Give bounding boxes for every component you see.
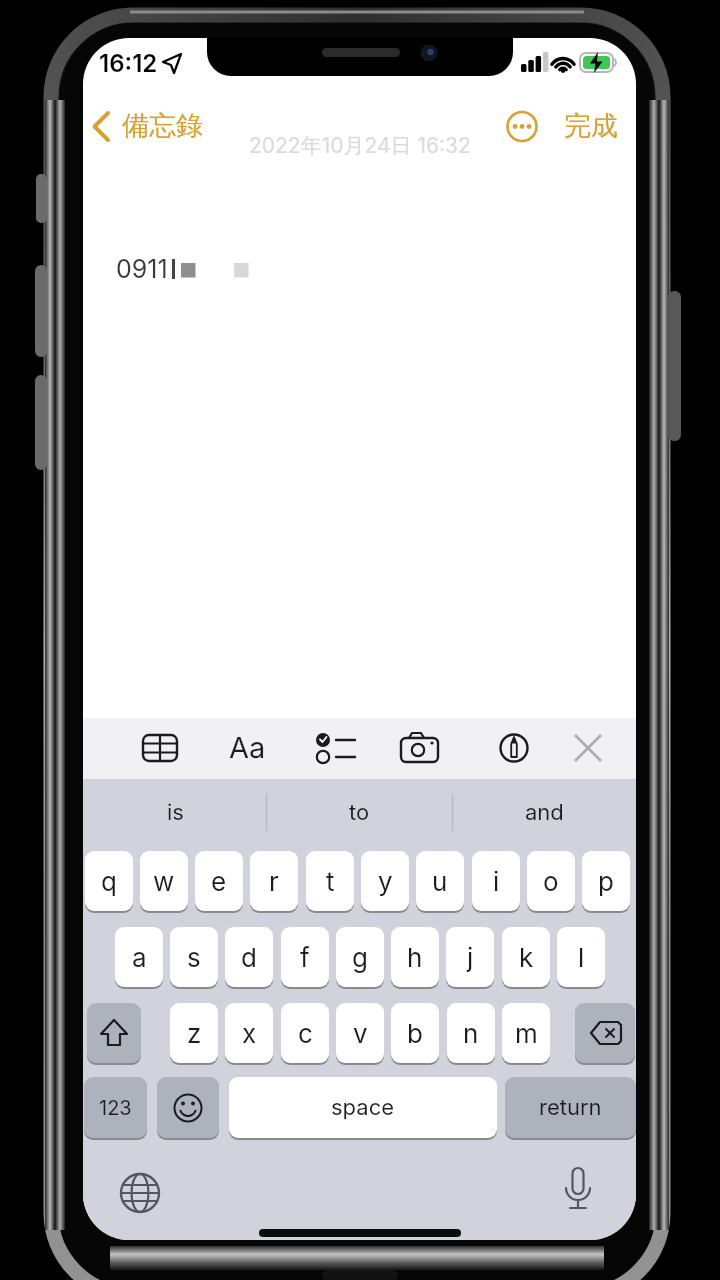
button[interactable]: to [267,786,451,838]
button[interactable] [575,1003,635,1063]
staticText: 2022年10月24日 16:32 [249,133,471,160]
button[interactable]: t [306,851,354,911]
button[interactable]: b [391,1003,439,1063]
button[interactable]: s [170,927,218,987]
staticText: e [211,866,227,897]
staticText: d [241,942,257,973]
staticText: l [578,942,585,973]
button[interactable]: l [557,927,605,987]
button[interactable]: x [225,1003,273,1063]
button[interactable]: g [336,927,384,987]
staticText: v [353,1018,368,1049]
button[interactable]: k [502,927,550,987]
button[interactable]: m [502,1003,550,1063]
staticText: y [378,866,393,897]
button[interactable]: y [361,851,409,911]
staticText: 0911 [116,254,168,284]
staticText: t [326,866,335,897]
staticText: r [269,866,279,897]
staticText: to [349,799,370,826]
button[interactable]: r [250,851,298,911]
staticText: s [187,942,201,973]
staticText: return [539,1094,602,1121]
button[interactable]: a [115,927,163,987]
staticText: 123 [99,1096,132,1120]
staticText: c [298,1018,313,1049]
staticText: n [463,1018,479,1049]
button[interactable]: q [85,851,133,911]
button[interactable]: f [281,927,329,987]
button[interactable]: h [391,927,439,987]
button[interactable]: j [446,927,494,987]
staticText: m [515,1018,538,1049]
staticText: i [493,866,500,897]
staticText: is [167,799,184,826]
button[interactable]: i [472,851,520,911]
button[interactable]: space [229,1077,497,1138]
button[interactable]: e [195,851,243,911]
staticText: 16:12 [99,49,158,78]
button[interactable]: p [582,851,630,911]
button[interactable] [157,1077,219,1138]
staticText: b [407,1018,423,1049]
button[interactable] [87,1003,141,1063]
staticText: and [525,799,564,826]
staticText: o [543,866,559,897]
button[interactable]: v [336,1003,384,1063]
staticText: 完成 [564,109,618,143]
button[interactable]: and [452,786,636,838]
button[interactable]: w [140,851,188,911]
staticText: j [467,942,474,973]
staticText: Aa [229,730,266,765]
staticText: x [242,1018,257,1049]
staticText: k [519,942,534,973]
button[interactable]: z [170,1003,218,1063]
staticText: a [132,942,147,973]
button[interactable]: c [281,1003,329,1063]
button[interactable]: return [505,1077,636,1138]
button[interactable]: d [225,927,273,987]
staticText: f [300,942,310,973]
staticText: u [432,866,448,897]
button[interactable]: n [447,1003,495,1063]
button[interactable]: 123 [84,1077,147,1138]
staticText: z [187,1018,202,1049]
staticText: w [153,866,175,897]
button[interactable]: o [527,851,575,911]
staticText: space [331,1094,395,1121]
button[interactable]: is [83,786,267,838]
button[interactable]: u [416,851,464,911]
staticText: h [407,942,423,973]
staticText: 備忘錄 [122,109,203,143]
staticText: p [598,866,614,897]
staticText: g [352,942,368,973]
staticText: q [101,866,117,897]
